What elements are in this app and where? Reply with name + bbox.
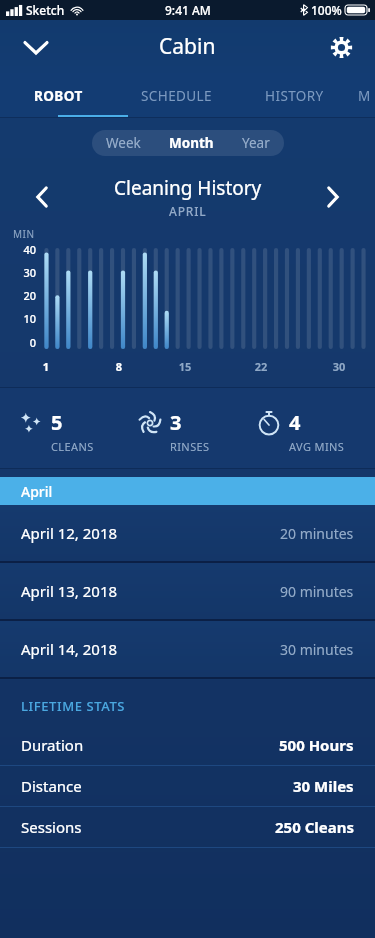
staticText: 10	[8, 311, 36, 326]
button[interactable]: Settings	[319, 25, 363, 69]
staticText: 30 Miles	[293, 776, 354, 796]
staticText: SCHEDULE	[141, 87, 212, 105]
staticText: 8	[109, 359, 129, 374]
staticText: CLEANS	[51, 439, 94, 454]
button[interactable]: Duration	[0, 725, 375, 765]
staticText: 9:41 AM	[165, 2, 211, 18]
staticText: Year	[242, 134, 270, 152]
staticText: Distance	[21, 776, 82, 796]
staticText: 90 minutes	[280, 582, 354, 601]
staticText: Week	[106, 134, 141, 152]
button[interactable]: April 13, 2018	[0, 563, 375, 619]
staticText: 0	[8, 335, 36, 350]
staticText: HISTORY	[265, 87, 324, 105]
staticText: 4	[289, 409, 301, 436]
button[interactable]: Previous month	[22, 177, 62, 217]
button[interactable]: Week	[92, 130, 155, 156]
staticText: 100%	[311, 2, 342, 18]
staticText: Sketch	[26, 2, 65, 18]
button[interactable]: M	[353, 73, 375, 118]
staticText: April	[21, 482, 53, 501]
button[interactable]: ROBOT	[0, 73, 117, 118]
button[interactable]: 5	[18, 409, 137, 454]
button[interactable]: Next month	[313, 177, 353, 217]
staticText: APRIL	[169, 203, 207, 219]
staticText: M	[358, 87, 371, 105]
staticText: RINSES	[170, 439, 210, 454]
staticText: ROBOT	[34, 87, 83, 105]
staticText: MIN	[13, 227, 35, 241]
staticText: Cabin	[159, 32, 216, 61]
staticText: 20	[8, 288, 36, 303]
button[interactable]: Collapse	[14, 25, 58, 69]
staticText: Cleaning History	[114, 175, 262, 201]
staticText: Duration	[21, 735, 84, 755]
staticText: 500 Hours	[279, 735, 354, 755]
button[interactable]: Sessions	[0, 807, 375, 847]
button[interactable]: HISTORY	[235, 73, 353, 118]
staticText: April 12, 2018	[21, 523, 118, 543]
staticText: 40	[8, 242, 36, 257]
staticText: 15	[175, 359, 195, 374]
staticText: Sessions	[21, 817, 82, 837]
button[interactable]: 4	[256, 409, 375, 454]
staticText: LIFETIME STATS	[21, 697, 126, 715]
button[interactable]: Month	[155, 130, 228, 156]
button[interactable]: 3	[137, 409, 256, 454]
staticText: 30 minutes	[280, 640, 354, 659]
staticText: 1	[36, 359, 56, 374]
button[interactable]: April 12, 2018	[0, 505, 375, 561]
staticText: 3	[170, 409, 182, 436]
staticText: 22	[251, 359, 271, 374]
staticText: AVG MINS	[289, 439, 345, 454]
button[interactable]: SCHEDULE	[117, 73, 235, 118]
staticText: 30	[329, 359, 349, 374]
staticText: 5	[51, 409, 63, 436]
button[interactable]: April	[0, 477, 375, 505]
button[interactable]: Year	[228, 130, 284, 156]
staticText: 20 minutes	[280, 524, 354, 543]
staticText: 30	[8, 265, 36, 280]
button[interactable]: April 14, 2018	[0, 621, 375, 677]
staticText: Month	[169, 134, 214, 152]
button[interactable]: Distance	[0, 766, 375, 806]
staticText: April 13, 2018	[21, 581, 118, 601]
staticText: April 14, 2018	[21, 639, 118, 659]
staticText: 250 Cleans	[275, 817, 354, 837]
